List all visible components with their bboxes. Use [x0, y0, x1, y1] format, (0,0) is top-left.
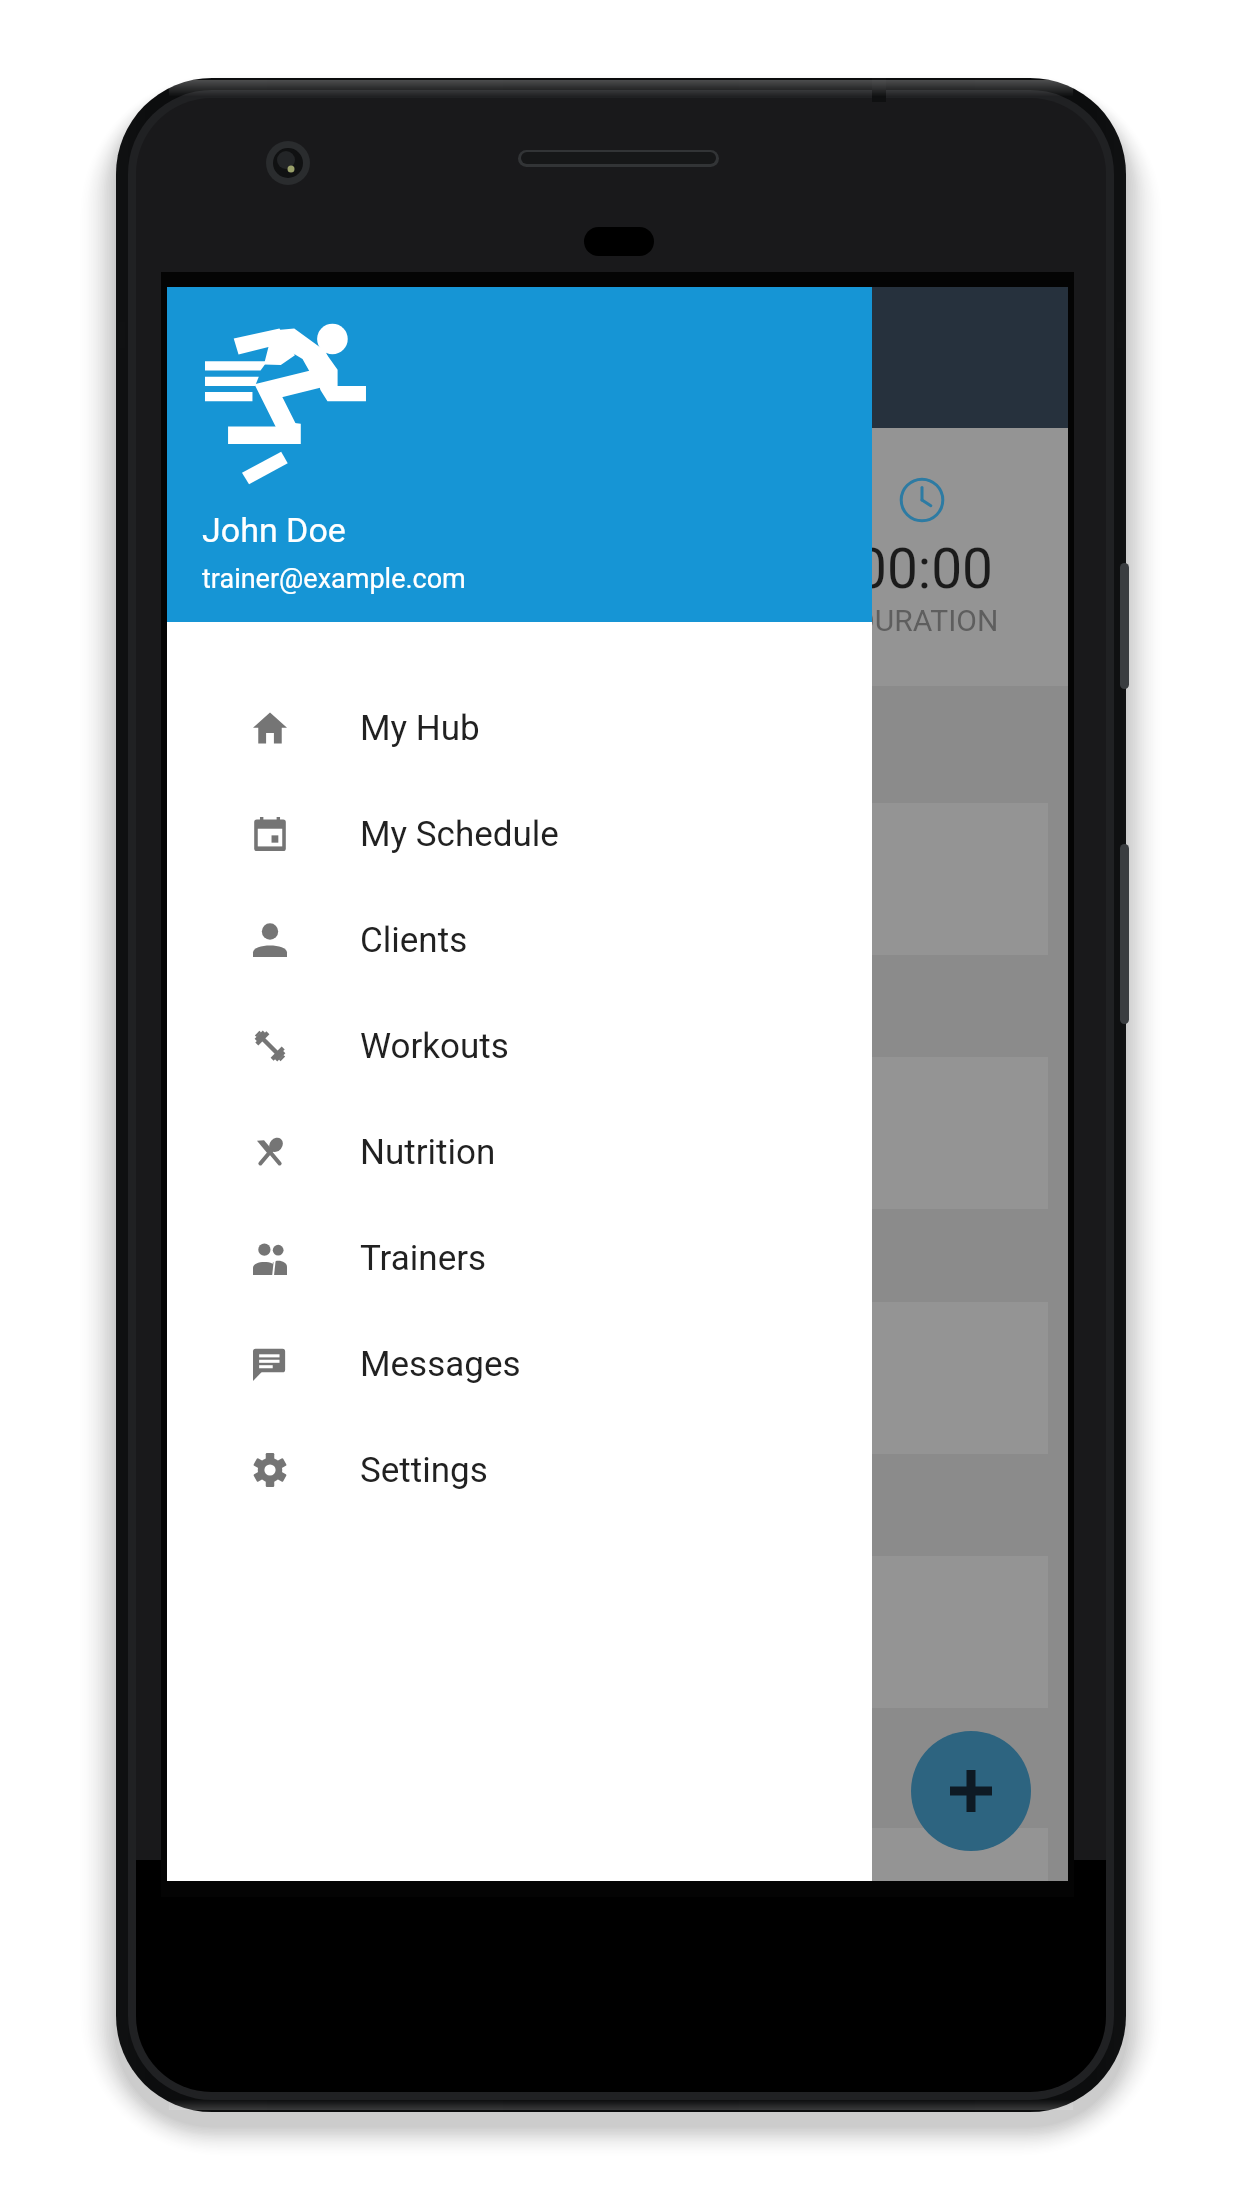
button[interactable]: My Schedule	[167, 781, 872, 887]
button[interactable]: Settings	[167, 1417, 872, 1523]
staticText: My Hub	[360, 708, 480, 749]
staticText: Messages	[360, 1344, 521, 1385]
button[interactable]: Messages	[167, 1311, 872, 1417]
button[interactable]: Trainers	[167, 1205, 872, 1311]
staticText: My Schedule	[360, 814, 559, 855]
staticText: Clients	[360, 920, 468, 961]
staticText: trainer@example.com	[202, 563, 466, 595]
button[interactable]: Workouts	[167, 993, 872, 1099]
staticText: Workouts	[360, 1026, 509, 1067]
staticText: Trainers	[360, 1238, 487, 1279]
staticText: Nutrition	[360, 1132, 496, 1173]
button[interactable]: Add workout	[911, 1731, 1031, 1851]
button[interactable]: My Hub	[167, 675, 872, 781]
staticText: Settings	[360, 1450, 488, 1491]
staticText: DURATION	[855, 603, 999, 638]
button[interactable]: Clients	[167, 887, 872, 993]
staticText: 00:00	[856, 537, 993, 601]
button[interactable]: Nutrition	[167, 1099, 872, 1205]
staticText: John Doe	[202, 510, 346, 550]
